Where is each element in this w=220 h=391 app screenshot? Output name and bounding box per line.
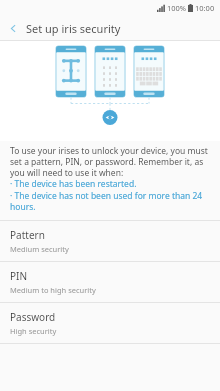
staticText: High security <box>10 326 57 336</box>
button[interactable]: Pattern <box>0 221 220 261</box>
staticText: 10:00 <box>195 3 215 13</box>
staticText: PIN <box>10 269 28 283</box>
staticText: Medium to high security <box>10 285 96 295</box>
staticText: · The device has been restarted. <box>10 178 137 190</box>
button[interactable]: Navigate up <box>0 16 26 40</box>
staticText: Medium security <box>10 244 69 254</box>
staticText: Set up iris security <box>26 21 121 36</box>
staticText: · The device has not been used for more … <box>10 190 210 212</box>
button[interactable]: Password <box>0 303 220 343</box>
button[interactable]: PIN <box>0 262 220 302</box>
staticText: To use your irises to unlock your device… <box>10 145 210 178</box>
staticText: Password <box>10 310 56 324</box>
staticText: Pattern <box>10 228 45 242</box>
staticText: 100% <box>167 3 187 13</box>
